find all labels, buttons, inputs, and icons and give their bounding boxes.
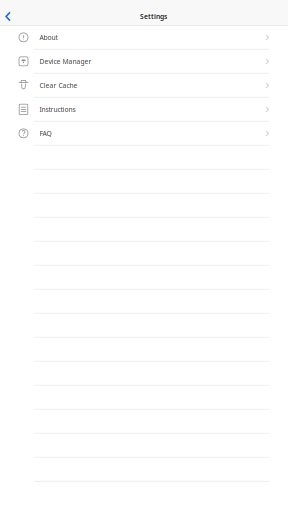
staticText: About [39,33,57,42]
button[interactable]: FAQ [0,122,288,146]
staticText: FAQ [39,129,51,138]
button[interactable]: Clear Cache [0,74,288,98]
button[interactable]: About [0,26,288,50]
staticText: Device Manager [39,57,91,66]
staticText: Clear Cache [39,81,77,90]
button[interactable]: Back [0,9,18,24]
button[interactable]: Device Manager [0,50,288,74]
staticText: Settings [140,12,167,21]
staticText: Instructions [39,105,75,114]
button[interactable]: Instructions [0,98,288,122]
